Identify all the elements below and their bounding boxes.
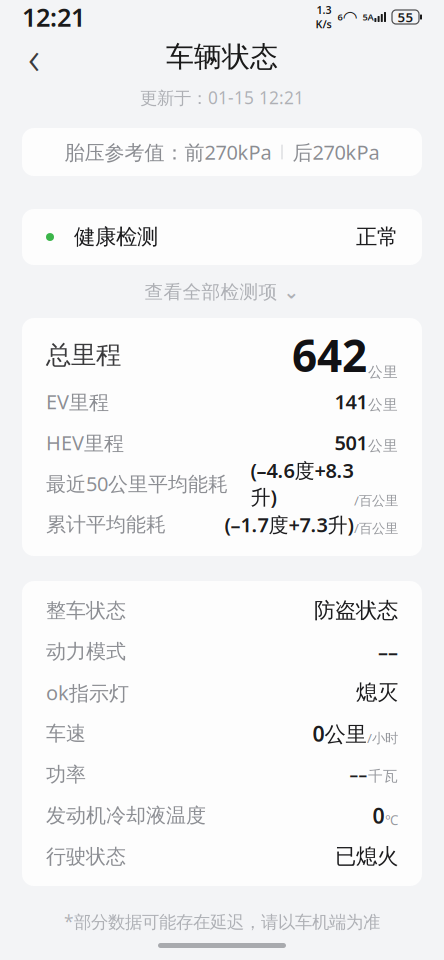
staticText: 车速 — [46, 721, 86, 746]
staticText: ℃ — [385, 811, 398, 829]
staticText: 642 — [292, 326, 367, 384]
staticText: /小时 — [367, 729, 398, 747]
staticText: 5A — [362, 11, 373, 23]
staticText: ◠ — [343, 7, 356, 27]
staticText: 更新于：01-15 12:21 — [140, 86, 304, 109]
staticText: *部分数据可能存在延迟，请以车机端为准 — [64, 910, 380, 933]
staticText: 公里 — [368, 363, 398, 381]
staticText: (–1.7度+7.3升) — [224, 511, 353, 538]
staticText: 6 — [337, 11, 342, 23]
staticText: 12:21 — [22, 0, 85, 34]
staticText: 整车状态 — [46, 598, 126, 623]
staticText: 已熄火 — [335, 843, 398, 870]
staticText: –– — [378, 638, 398, 665]
staticText: 141 — [334, 388, 367, 415]
staticText: 后270kPa — [292, 139, 379, 165]
staticText: EV里程 — [46, 388, 109, 415]
staticText: 查看全部检测项 — [144, 281, 277, 303]
staticText: 0公里 — [312, 719, 366, 748]
staticText: 累计平均能耗 — [46, 512, 166, 537]
staticText: (–4.6度+8.3升) — [250, 457, 353, 510]
staticText: /百公里 — [354, 491, 398, 509]
staticText: 动力模式 — [46, 639, 126, 664]
staticText: 车辆状态 — [166, 40, 278, 74]
button[interactable]: 查看全部检测项 — [124, 277, 319, 307]
staticText: 55 — [397, 8, 413, 26]
staticText: 总里程 — [46, 339, 121, 371]
staticText: /百公里 — [354, 519, 398, 537]
staticText: ok指示灯 — [46, 679, 129, 706]
staticText: 功率 — [46, 762, 86, 787]
staticText: 正常 — [356, 224, 398, 250]
staticText: 发动机冷却液温度 — [46, 803, 206, 828]
staticText: ‹ — [28, 27, 40, 87]
staticText: 千瓦 — [368, 767, 398, 785]
staticText: ⌄ — [283, 281, 299, 303]
staticText: 最近50公里平均能耗 — [46, 470, 228, 497]
staticText: 胎压参考值：前270kPa — [64, 139, 271, 165]
staticText: 1.3 — [316, 3, 331, 17]
staticText: 健康检测 — [74, 224, 158, 250]
staticText: 公里 — [368, 437, 398, 455]
staticText: –– — [349, 763, 367, 786]
button[interactable]: 返回 — [12, 35, 56, 79]
staticText: 熄灭 — [356, 679, 398, 706]
staticText: 501 — [334, 429, 367, 456]
staticText: K/s — [315, 17, 331, 31]
staticText: 行驶状态 — [46, 844, 126, 869]
button[interactable]: 健康检测 — [0, 209, 444, 265]
staticText: 防盗状态 — [314, 597, 398, 624]
staticText: HEV里程 — [46, 429, 124, 456]
staticText: 公里 — [368, 396, 398, 414]
staticText: 0 — [372, 801, 384, 830]
